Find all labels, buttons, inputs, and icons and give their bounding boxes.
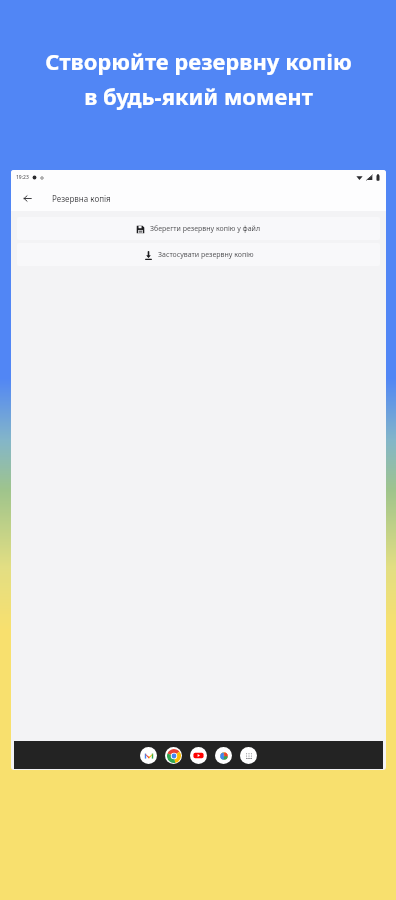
button[interactable]: Back <box>18 189 36 207</box>
button[interactable]: YouTube <box>190 747 207 764</box>
button[interactable]: Google Photos <box>215 747 232 764</box>
button[interactable]: Chrome <box>165 747 182 764</box>
staticText: Створюйте резервну копію <box>45 46 352 76</box>
staticText: Резервна копія <box>52 193 111 204</box>
button[interactable]: Gmail <box>140 747 157 764</box>
button[interactable]: Зберегти резервну копію у файл <box>17 217 380 240</box>
button[interactable]: Apps <box>240 747 257 764</box>
staticText: в будь-який момент <box>84 81 313 111</box>
staticText: 19:23 <box>16 174 29 181</box>
button[interactable]: Застосувати резервну копію <box>17 243 380 266</box>
staticText: Зберегти резервну копію у файл <box>150 224 261 234</box>
staticText: Застосувати резервну копію <box>158 250 254 260</box>
